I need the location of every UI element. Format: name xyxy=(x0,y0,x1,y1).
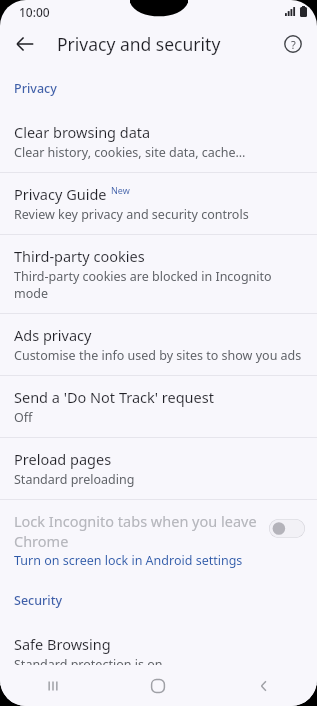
staticText: Always use secure connections xyxy=(14,687,246,706)
staticText: Ads privacy xyxy=(14,325,92,345)
button[interactable]: Privacy Guide xyxy=(0,173,317,234)
staticText: Privacy and security xyxy=(57,32,221,56)
staticText: Privacy xyxy=(14,80,57,97)
button[interactable]: Back xyxy=(211,665,317,706)
staticText: 10:00 xyxy=(19,4,50,20)
button[interactable]: Help xyxy=(277,28,309,60)
button[interactable]: Lock Incognito tabs toggle xyxy=(269,519,305,538)
button[interactable]: Safe Browsing xyxy=(0,623,317,684)
button[interactable]: Preload pages xyxy=(0,438,317,499)
button[interactable]: Send a 'Do Not Track' request xyxy=(0,376,317,437)
staticText: Security xyxy=(14,592,63,609)
staticText: ? xyxy=(291,37,296,52)
staticText: Third-party cookies are blocked in Incog… xyxy=(14,268,303,302)
button[interactable]: Back xyxy=(8,27,42,61)
staticText: Preload pages xyxy=(14,449,112,469)
staticText: Off xyxy=(14,409,33,426)
staticText: Standard protection is on xyxy=(14,656,163,673)
button[interactable]: Third-party cookies xyxy=(0,235,317,313)
staticText: Standard preloading xyxy=(14,471,135,488)
button[interactable]: Clear browsing data xyxy=(0,111,317,172)
staticText: New xyxy=(111,184,130,196)
staticText: Review key privacy and security controls xyxy=(14,206,249,223)
staticText: Clear browsing data xyxy=(14,122,151,142)
staticText: Turn on screen lock in Android settings xyxy=(14,552,243,569)
staticText: Lock Incognito tabs when you leave Chrom… xyxy=(14,511,261,551)
button[interactable]: Recent apps xyxy=(0,665,105,706)
staticText: Third-party cookies xyxy=(14,246,145,266)
button[interactable]: Home xyxy=(105,665,211,706)
staticText: Safe Browsing xyxy=(14,634,111,654)
button[interactable]: Always use secure connections xyxy=(0,685,317,706)
staticText: Send a 'Do Not Track' request xyxy=(14,387,214,407)
staticText: Privacy Guide xyxy=(14,184,107,204)
staticText: Customise the info used by sites to show… xyxy=(14,347,302,364)
button[interactable]: Lock Incognito tabs when you leave Chrom… xyxy=(0,500,317,580)
button[interactable]: Ads privacy xyxy=(0,314,317,375)
staticText: Clear history, cookies, site data, cache… xyxy=(14,144,246,161)
